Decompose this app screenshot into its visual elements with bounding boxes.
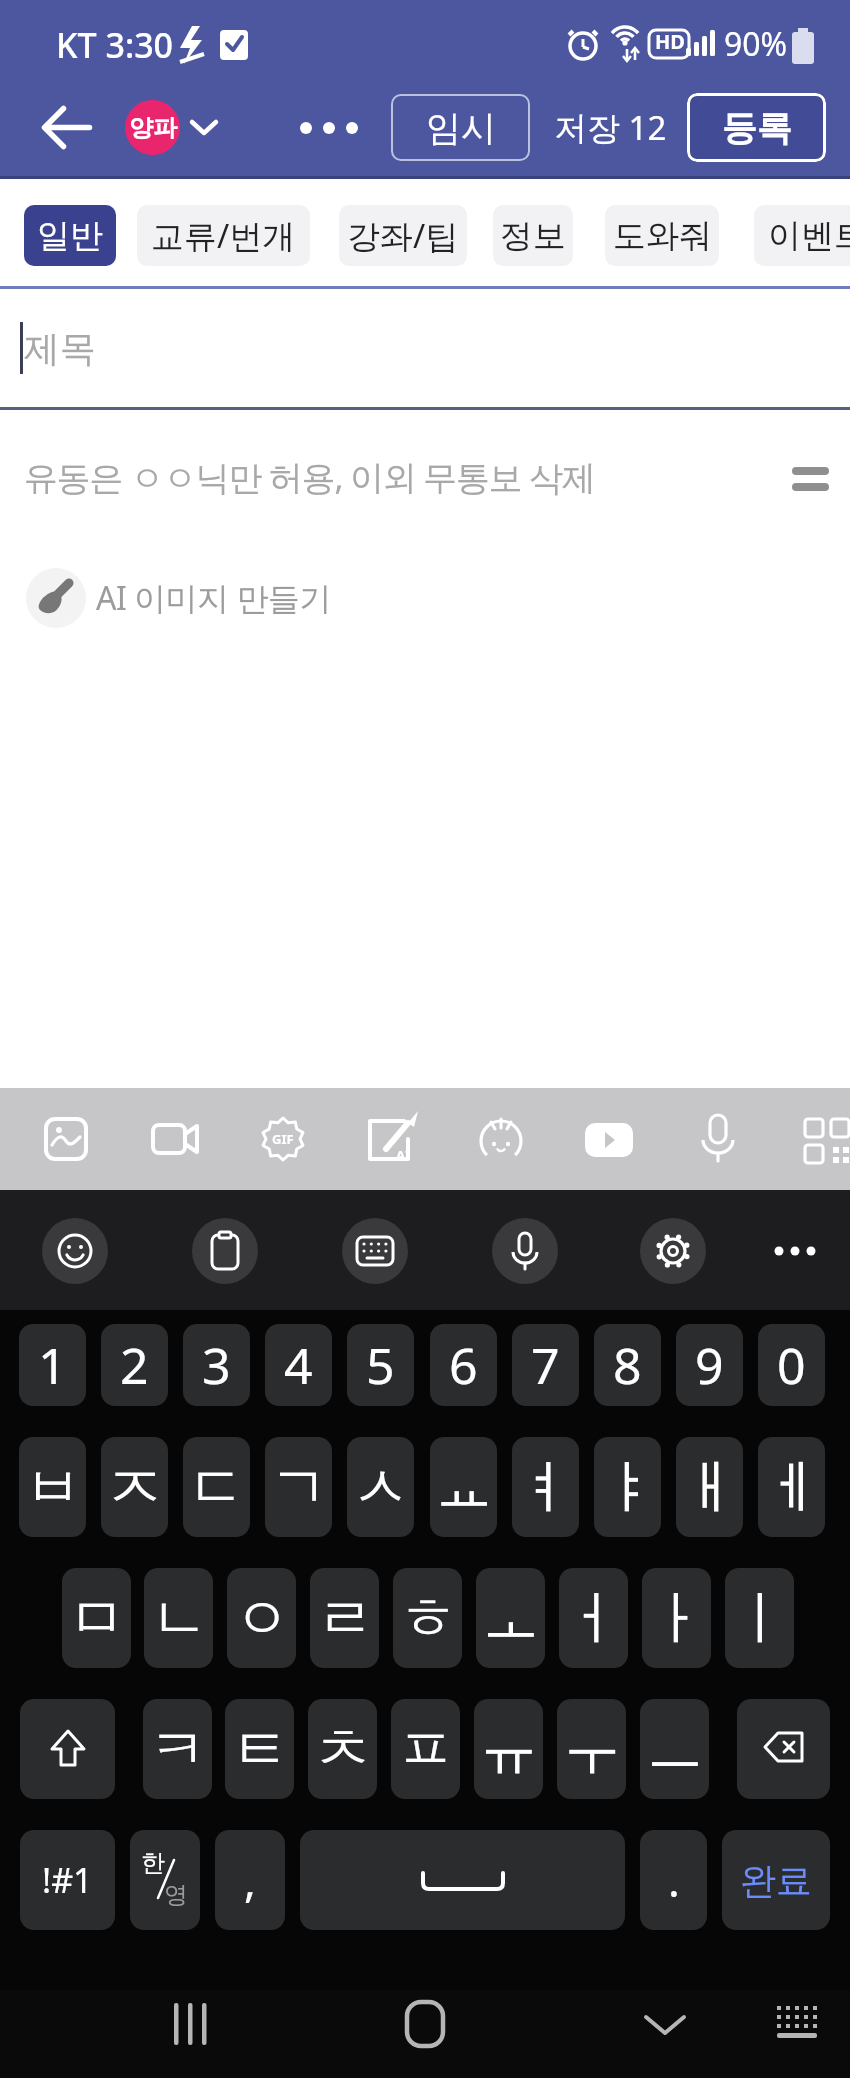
button[interactable]: 6 [430,1324,497,1406]
button[interactable]: 0 [758,1324,825,1406]
staticText: 강좌/팁 [347,213,459,258]
button[interactable]: ㅅ [347,1437,414,1537]
staticText: ㄷ [188,1451,246,1524]
button[interactable] [42,1218,108,1284]
button[interactable]: 5 [347,1324,414,1406]
button[interactable] [160,1995,220,2055]
button[interactable] [635,1995,695,2055]
button[interactable]: 1 [19,1324,86,1406]
button[interactable]: ㅔ [758,1437,825,1537]
button[interactable]: ㅓ [559,1568,628,1668]
button[interactable]: ㅡ [640,1699,709,1799]
button[interactable]: 완료 [722,1830,830,1930]
button[interactable] [640,1218,706,1284]
button[interactable]: ㅕ [512,1437,579,1537]
button[interactable] [35,95,100,160]
staticText: ㅡ [646,1713,704,1786]
button[interactable]: ㅠ [474,1699,543,1799]
button[interactable]: ㅈ [101,1437,168,1537]
button[interactable]: 8 [594,1324,661,1406]
button[interactable]: ㅛ [430,1437,497,1537]
button[interactable]: ㄷ [183,1437,250,1537]
button[interactable]: 강좌/팁 [339,205,467,266]
button[interactable]: 3 [183,1324,250,1406]
staticText: 일반 [37,215,103,257]
button[interactable]: ㅊ [308,1699,377,1799]
staticText: 교류/번개 [151,213,296,258]
button[interactable]: ㅜ [557,1699,626,1799]
button[interactable] [737,1699,830,1799]
button[interactable] [770,1998,826,2054]
button[interactable]: ㄴ [144,1568,213,1668]
button[interactable]: 교류/번개 [137,205,310,266]
button[interactable] [300,1830,625,1930]
button[interactable]: 일반 [24,205,116,266]
button[interactable]: !#1 [20,1830,115,1930]
button[interactable] [492,1218,558,1284]
button[interactable]: AI [360,1107,424,1171]
button[interactable]: ㅐ [676,1437,743,1537]
button[interactable]: ㅏ [642,1568,711,1668]
button[interactable] [795,1107,850,1171]
button[interactable]: ㅇ [227,1568,296,1668]
staticText: 임시 [426,106,496,150]
staticText: 제목 [24,326,96,371]
button[interactable] [20,1699,115,1799]
button[interactable]: 정보 [493,205,573,266]
button[interactable] [342,1218,408,1284]
button[interactable] [143,1107,207,1171]
staticText: 6 [449,1331,478,1399]
button[interactable]: AI 이미지 만들기 [96,573,396,623]
staticText: ㅜ [563,1713,621,1786]
button[interactable] [686,1107,750,1171]
staticText: 5 [366,1331,395,1399]
button[interactable]: 한 [130,1830,200,1930]
staticText: 완료 [740,1858,812,1903]
button[interactable]: ㅣ [725,1568,794,1668]
staticText: GIF [272,1130,294,1148]
staticText: ㅋ [149,1713,207,1786]
staticText: AI 이미지 만들기 [96,576,331,620]
button[interactable]: 임시 [391,94,530,161]
button[interactable]: 등록 [687,93,826,162]
button[interactable]: ㅌ [225,1699,294,1799]
button[interactable]: 이벤트 [754,205,850,266]
button[interactable]: GIF [251,1107,315,1171]
button[interactable]: ㅋ [143,1699,212,1799]
staticText: ㅣ [731,1582,789,1655]
staticText: ㅗ [482,1582,540,1655]
button[interactable] [192,1218,258,1284]
button[interactable]: , [215,1830,285,1930]
button[interactable]: ㄱ [265,1437,332,1537]
staticText: ㄱ [270,1451,328,1524]
button[interactable]: ㅂ [19,1437,86,1537]
button[interactable] [26,568,86,628]
button[interactable]: 7 [512,1324,579,1406]
button[interactable]: ㅎ [393,1568,462,1668]
button[interactable] [577,1107,641,1171]
staticText: 4 [284,1331,313,1399]
staticText: 도와줘 [613,215,712,257]
staticText: 7 [531,1331,560,1399]
staticText: 등록 [722,106,792,150]
staticText: ㅓ [565,1582,623,1655]
button[interactable]: ㄹ [310,1568,379,1668]
staticText: ㅔ [763,1451,821,1524]
staticText: 3 [202,1331,231,1399]
button[interactable]: ㅑ [594,1437,661,1537]
button[interactable]: 4 [265,1324,332,1406]
staticText: KT 3:30 [56,22,174,66]
staticText: 9 [695,1331,724,1399]
button[interactable]: ㅗ [476,1568,545,1668]
staticText: 양파 [129,113,177,143]
button[interactable]: . [640,1830,707,1930]
button[interactable]: 9 [676,1324,743,1406]
button[interactable]: ㅍ [391,1699,460,1799]
button[interactable]: 도와줘 [605,205,719,266]
button[interactable] [395,1995,455,2055]
button[interactable] [34,1107,98,1171]
button[interactable] [469,1107,533,1171]
button[interactable]: 양파 [125,100,180,155]
button[interactable]: 2 [101,1324,168,1406]
button[interactable]: ㅁ [62,1568,131,1668]
